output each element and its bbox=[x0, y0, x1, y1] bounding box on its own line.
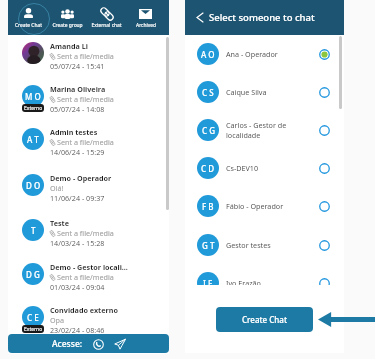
staticText: Teste bbox=[50, 218, 69, 228]
button[interactable]: WhatsApp bbox=[93, 339, 104, 350]
staticText: 11/06/24 - 09:37 bbox=[50, 193, 105, 203]
staticText: C G bbox=[202, 125, 215, 136]
staticText: Opa bbox=[50, 315, 65, 325]
staticText: Archived bbox=[136, 22, 156, 29]
staticText: Externo bbox=[24, 326, 43, 333]
staticText: 14/03/24 - 15:28 bbox=[50, 238, 105, 248]
staticText: 14/06/24 - 15:29 bbox=[50, 147, 105, 157]
staticText: Select someone to chat bbox=[209, 11, 315, 24]
staticText: Carlos - Gestor de localidade bbox=[226, 120, 287, 140]
button[interactable]: C S bbox=[185, 73, 344, 111]
staticText: External chat bbox=[91, 22, 122, 29]
staticText: T bbox=[31, 225, 36, 236]
staticText: Caique Silva bbox=[226, 87, 267, 97]
button[interactable]: Acesse: bbox=[8, 334, 169, 353]
staticText: 05/07/24 - 15:41 bbox=[50, 61, 105, 71]
staticText: Create Chat bbox=[15, 22, 42, 29]
staticText: Create Chat bbox=[242, 314, 287, 325]
button[interactable]: F B bbox=[185, 187, 344, 225]
button[interactable]: D G bbox=[8, 262, 169, 292]
staticText: I E bbox=[203, 278, 213, 285]
staticText: Sent a file/media bbox=[57, 94, 114, 104]
button[interactable]: Archived bbox=[126, 0, 165, 35]
button[interactable]: M O bbox=[8, 84, 169, 114]
staticText: Create group bbox=[52, 22, 83, 29]
staticText: Sent a file/media bbox=[57, 272, 114, 282]
button[interactable]: Create group bbox=[48, 0, 87, 35]
staticText: Ana - Operador bbox=[226, 49, 278, 59]
staticText: Marina Oliveira bbox=[50, 84, 106, 94]
staticText: F B bbox=[202, 201, 214, 212]
staticText: C D bbox=[201, 163, 215, 174]
button[interactable]: Telegram bbox=[114, 338, 126, 350]
button[interactable]: A O bbox=[185, 35, 344, 73]
staticText: Amanda Li bbox=[50, 41, 88, 51]
staticText: 01/03/24 - 09:04 bbox=[50, 282, 105, 292]
button[interactable]: D O bbox=[8, 173, 169, 203]
staticText: Gestor testes bbox=[226, 240, 271, 250]
button[interactable]: C E bbox=[8, 305, 169, 334]
staticText: Sent a file/media bbox=[57, 51, 114, 61]
staticText: 23/02/24 - 08:46 bbox=[50, 325, 105, 334]
button[interactable]: T bbox=[8, 218, 169, 248]
staticText: Cs-DEV10 bbox=[226, 163, 259, 173]
staticText: Externo bbox=[24, 105, 43, 112]
button[interactable]: C G bbox=[185, 111, 344, 149]
other: Back bbox=[197, 13, 203, 22]
staticText: Olá! bbox=[50, 183, 64, 193]
button[interactable]: A T bbox=[8, 127, 169, 157]
staticText: A T bbox=[27, 134, 39, 145]
staticText: Sent a file/media bbox=[57, 228, 114, 238]
staticText: Sent a file/media bbox=[57, 137, 114, 147]
staticText: A O bbox=[201, 49, 215, 60]
staticText: Convidado externo bbox=[50, 305, 118, 315]
button[interactable]: Create Chat bbox=[8, 0, 48, 35]
button[interactable]: External chat bbox=[87, 0, 126, 35]
staticText: Acesse: bbox=[52, 338, 83, 350]
staticText: D O bbox=[26, 180, 41, 191]
staticText: Fábio - Operador bbox=[226, 201, 284, 211]
button[interactable]: C D bbox=[185, 149, 344, 187]
button[interactable]: G T bbox=[185, 226, 344, 264]
staticText: C S bbox=[202, 87, 214, 98]
staticText: G T bbox=[202, 240, 215, 251]
staticText: D G bbox=[26, 269, 40, 280]
button[interactable]: Amanda Li bbox=[8, 41, 169, 71]
staticText: Ivo Erazão bbox=[226, 278, 261, 285]
button[interactable]: Back bbox=[185, 0, 344, 35]
staticText: 05/07/24 - 14:08 bbox=[50, 104, 105, 114]
button[interactable]: I E bbox=[185, 264, 344, 285]
staticText: M O bbox=[25, 91, 41, 102]
staticText: Demo - Operador bbox=[50, 173, 112, 183]
staticText: Admin testes bbox=[50, 127, 98, 137]
staticText: Demo - Gestor locali... bbox=[50, 262, 128, 272]
staticText: C E bbox=[27, 312, 39, 323]
button[interactable]: Create Chat bbox=[216, 307, 313, 332]
